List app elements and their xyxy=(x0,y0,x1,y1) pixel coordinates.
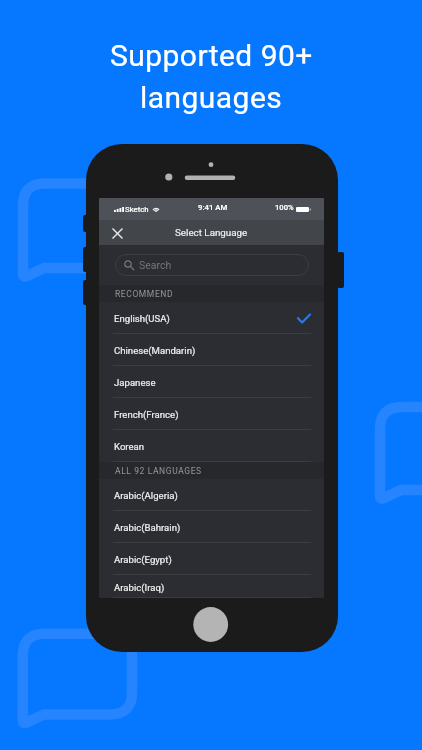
staticText: 100% xyxy=(275,203,294,212)
button[interactable]: English(USA) xyxy=(99,302,324,334)
staticText: languages xyxy=(140,80,283,115)
staticText: Search xyxy=(139,259,172,271)
staticText: Chinese(Mandarin) xyxy=(114,345,196,356)
button[interactable]: Chinese(Mandarin) xyxy=(99,334,324,366)
staticText: Korean xyxy=(114,441,145,452)
staticText: Select Language xyxy=(175,227,248,238)
staticText: Arabic(Bahrain) xyxy=(114,522,181,533)
button[interactable]: Search xyxy=(115,254,309,276)
staticText: Arabic(Iraq) xyxy=(114,582,165,593)
staticText: Sketch xyxy=(125,205,149,214)
button[interactable]: Arabic(Iraq) xyxy=(99,575,324,598)
button[interactable]: Japanese xyxy=(99,366,324,398)
staticText: Supported 90+ xyxy=(110,38,313,73)
button[interactable]: French(France) xyxy=(99,398,324,430)
staticText: 9:41 AM xyxy=(198,203,228,212)
button[interactable]: Arabic(Bahrain) xyxy=(99,511,324,543)
button[interactable]: Arabic(Algeria) xyxy=(99,479,324,511)
staticText: RECOMMEND xyxy=(115,289,174,299)
staticText: English(USA) xyxy=(114,313,170,324)
staticText: Arabic(Egypt) xyxy=(114,554,172,565)
button[interactable]: Korean xyxy=(99,430,324,462)
staticText: Japanese xyxy=(114,377,156,388)
button[interactable]: Close xyxy=(108,224,126,242)
staticText: Arabic(Algeria) xyxy=(114,490,178,501)
staticText: ALL 92 LANGUAGES xyxy=(115,466,202,476)
button[interactable]: Arabic(Egypt) xyxy=(99,543,324,575)
staticText: French(France) xyxy=(114,409,179,420)
